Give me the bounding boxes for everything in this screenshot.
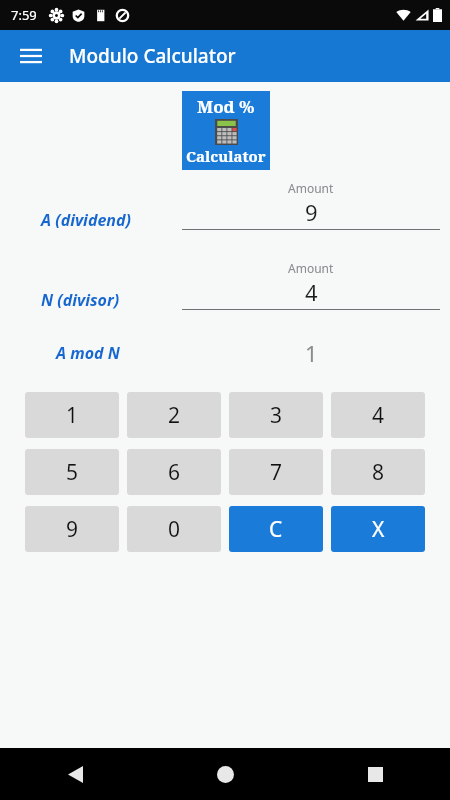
staticText: 7 [270, 458, 283, 487]
button[interactable]: 9 [25, 506, 119, 552]
staticText: 5 [66, 458, 79, 487]
staticText: Mod % [197, 95, 255, 118]
staticText: Amount [288, 260, 334, 276]
staticText: N (divisor) [41, 289, 120, 311]
staticText: 1 [66, 401, 79, 430]
button[interactable]: 7 [229, 449, 323, 495]
button[interactable]: Recent apps [300, 748, 450, 800]
staticText: 1 [305, 338, 318, 368]
staticText: 4 [372, 401, 385, 430]
button[interactable]: 4 [331, 392, 425, 438]
button[interactable]: 2 [127, 392, 221, 438]
button[interactable]: Home [150, 748, 300, 800]
button[interactable]: 3 [229, 392, 323, 438]
staticText: 4 [305, 277, 318, 307]
staticText: 6 [168, 458, 181, 487]
button[interactable]: 8 [331, 449, 425, 495]
button[interactable]: X [331, 506, 425, 552]
staticText: 9 [66, 515, 79, 544]
staticText: 7:59 [11, 6, 37, 24]
button[interactable]: 6 [127, 449, 221, 495]
staticText: X [372, 515, 385, 544]
staticText: Amount [288, 180, 334, 196]
button[interactable]: 1 [25, 392, 119, 438]
button[interactable]: Open navigation menu [8, 33, 54, 79]
staticText: 0 [168, 515, 181, 544]
staticText: 3 [270, 401, 283, 430]
button[interactable]: C [229, 506, 323, 552]
button[interactable]: Back [0, 748, 150, 800]
button[interactable]: 0 [127, 506, 221, 552]
staticText: C [269, 515, 283, 544]
staticText: 9 [305, 197, 318, 227]
staticText: 8 [372, 458, 385, 487]
staticText: A (dividend) [41, 209, 131, 231]
staticText: Calculator [186, 146, 266, 166]
staticText: 2 [168, 401, 181, 430]
button[interactable]: Amount [182, 180, 440, 230]
button[interactable]: Mod % Calculator logo [182, 91, 270, 170]
staticText: A mod N [56, 342, 120, 364]
button[interactable]: Amount [182, 260, 440, 310]
staticText: Modulo Calculator [69, 43, 236, 69]
button[interactable]: 5 [25, 449, 119, 495]
